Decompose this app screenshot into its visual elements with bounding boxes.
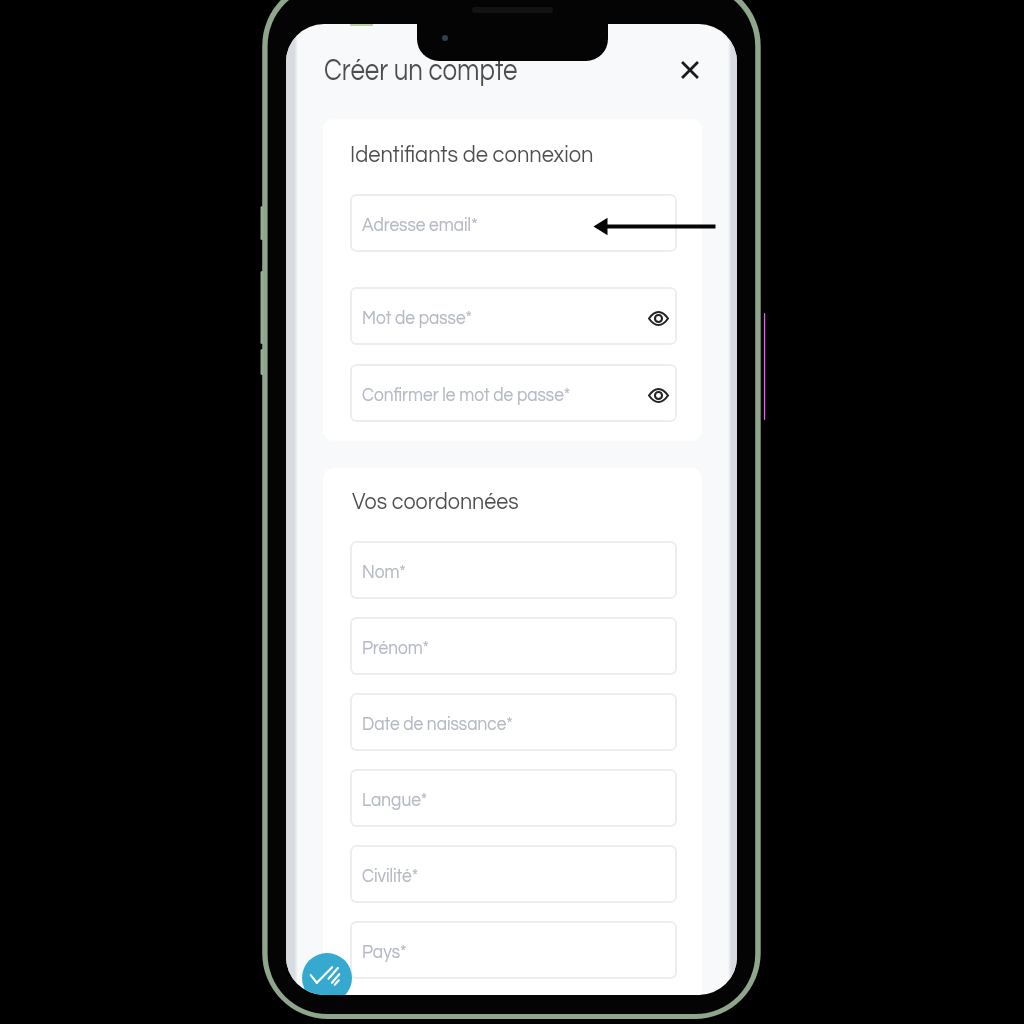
button[interactable]: Mot de passe* [350,287,677,345]
button[interactable]: Feedback widget [302,953,352,995]
button[interactable]: Show password [641,380,676,410]
button[interactable]: Show password [641,303,676,333]
button[interactable]: Langue* [350,769,677,827]
button[interactable]: Close [675,55,705,85]
staticText: Créer un compte [324,55,517,87]
button[interactable]: Prénom* [350,617,677,675]
staticText: Adresse email* [362,215,478,235]
button[interactable]: Civilité* [350,845,677,903]
staticText: Nom* [362,562,406,582]
staticText: Langue* [362,790,428,810]
staticText: Vos coordonnées [352,489,519,514]
button[interactable]: Adresse email* [350,194,677,252]
button[interactable]: Date de naissance* [350,693,677,751]
staticText: Pays* [362,942,407,962]
button[interactable]: Pays* [350,921,677,979]
staticText: Confirmer le mot de passe* [362,385,571,405]
staticText: Mot de passe* [362,308,473,328]
staticText: Date de naissance* [362,714,513,734]
staticText: Prénom* [362,638,430,658]
button[interactable]: Confirmer le mot de passe* [350,364,677,422]
staticText: Civilité* [362,866,418,886]
staticText: Identifiants de connexion [350,142,594,167]
button[interactable]: Nom* [350,541,677,599]
